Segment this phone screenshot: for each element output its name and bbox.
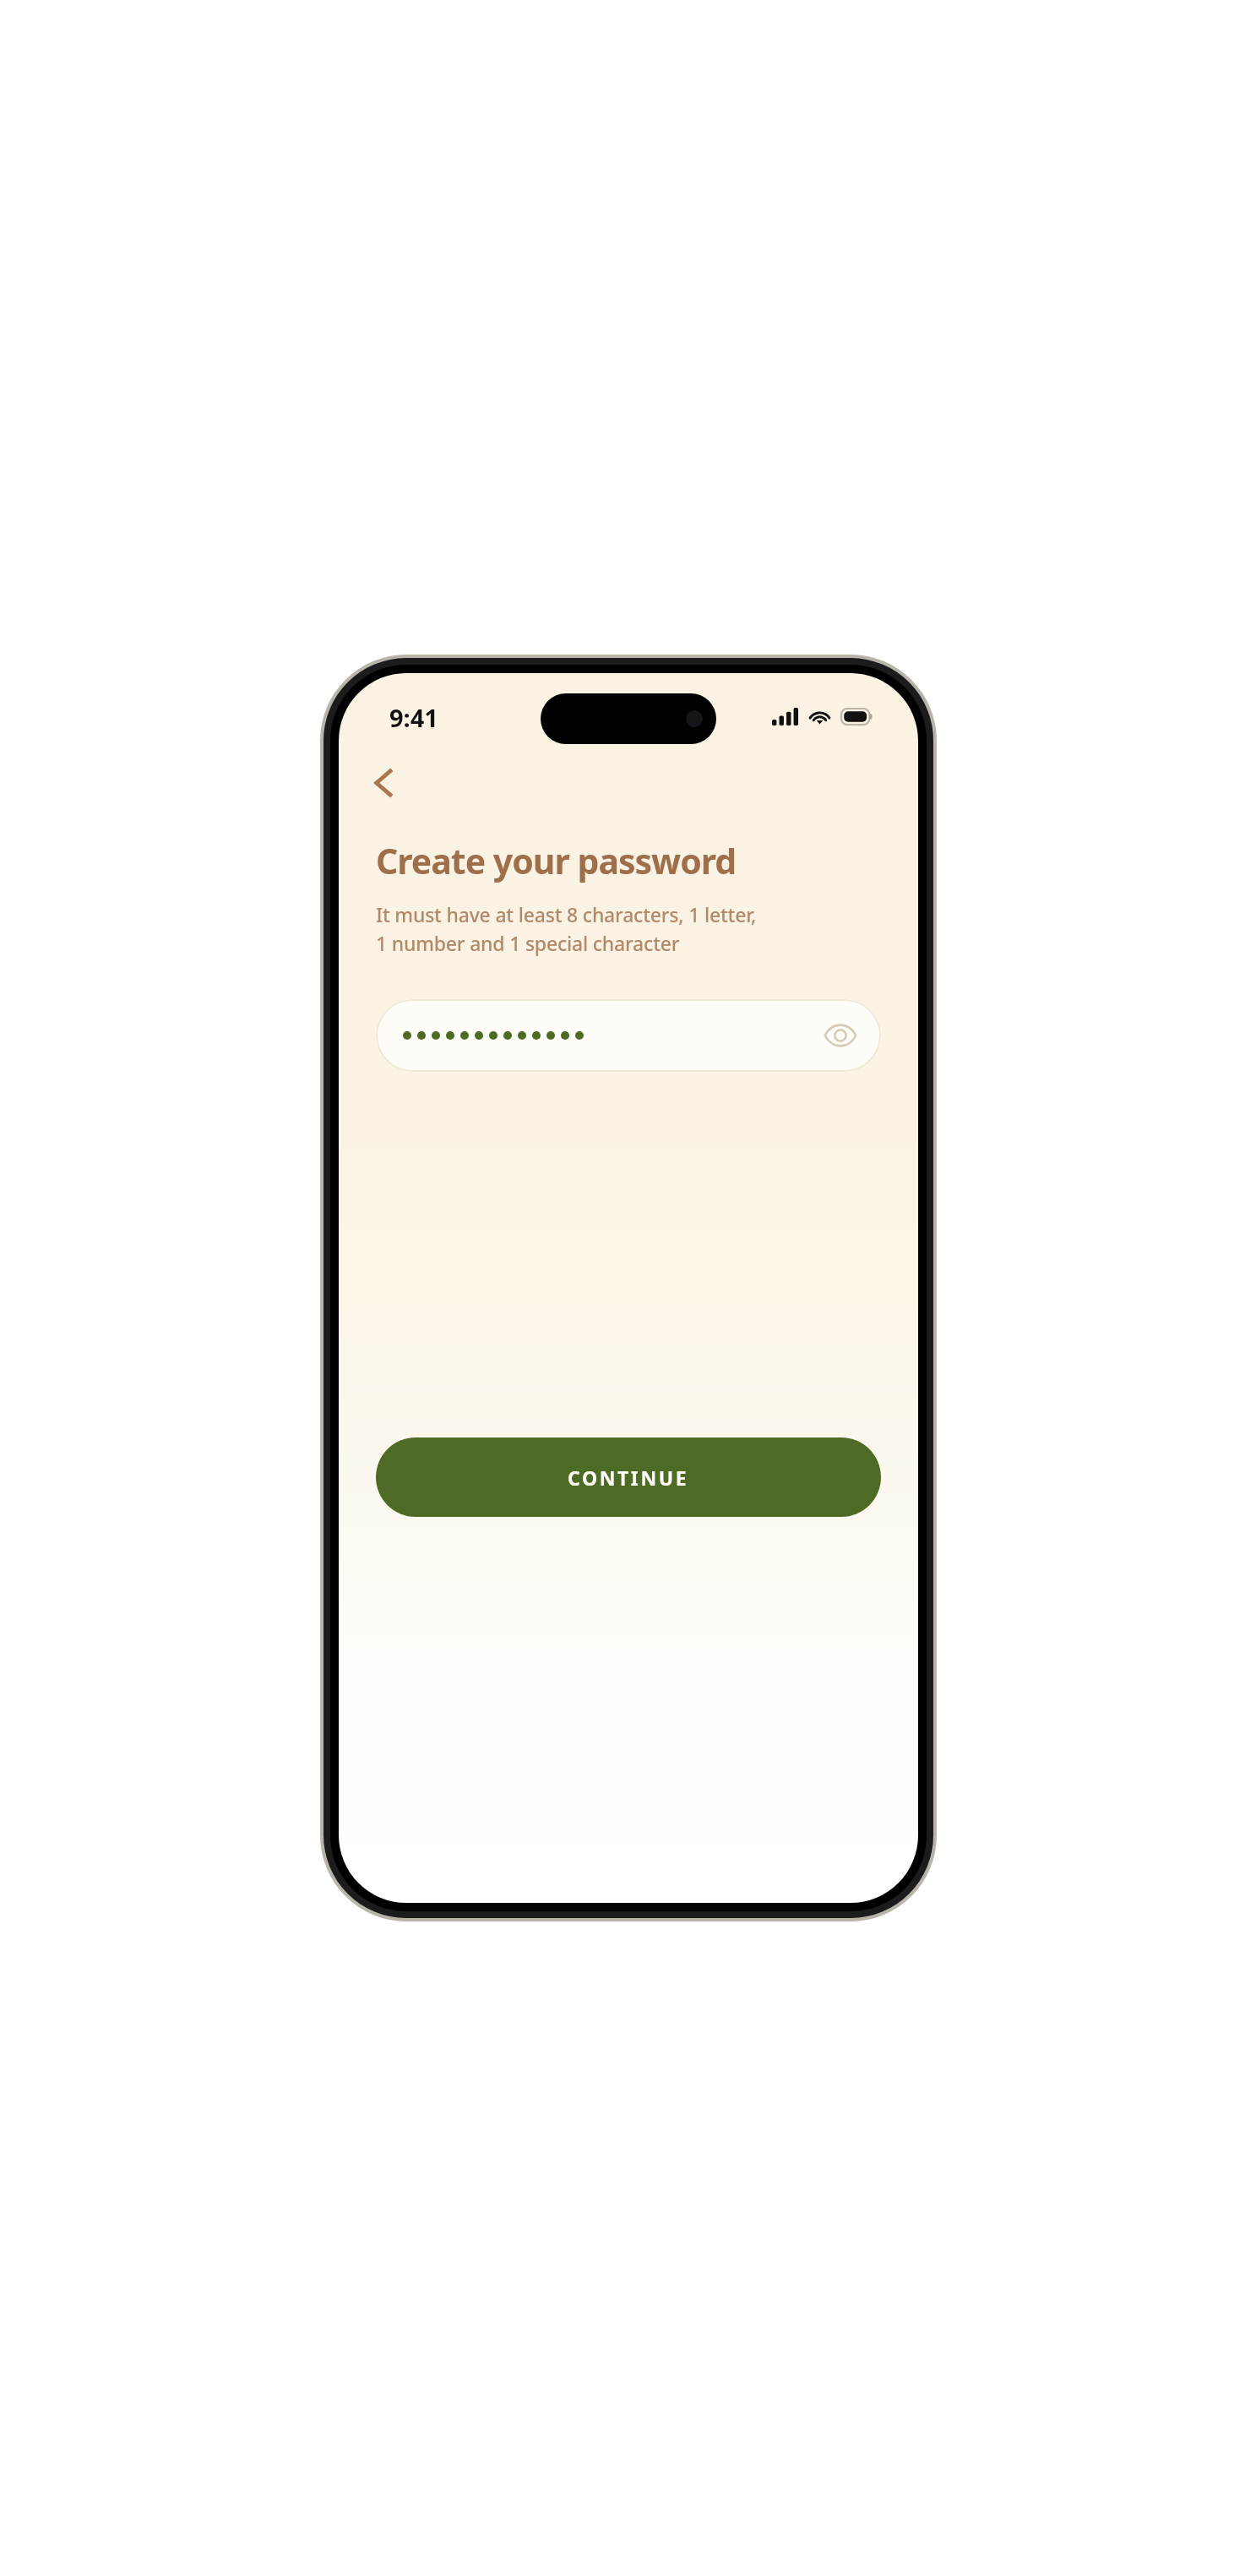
staticText: Create your password	[376, 837, 737, 884]
staticText: 9:41	[389, 701, 438, 734]
staticText: CONTINUE	[568, 1465, 689, 1491]
button[interactable]: Show password	[817, 1012, 864, 1059]
button[interactable]: Back	[359, 758, 410, 808]
staticText: It must have at least 8 characters, 1 le…	[376, 901, 757, 957]
button[interactable]: Show password	[376, 999, 881, 1072]
button[interactable]: CONTINUE	[376, 1437, 881, 1517]
